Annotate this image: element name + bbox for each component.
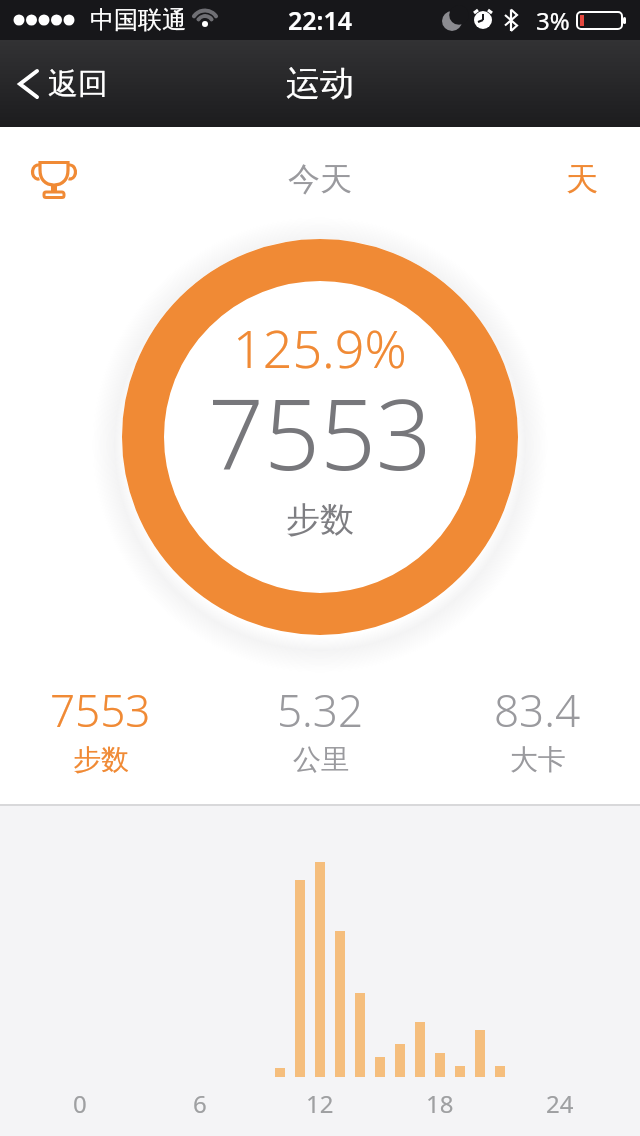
staticText: 中国联通: [90, 5, 186, 35]
staticText: 125.9%: [233, 312, 407, 383]
staticText: 返回: [48, 65, 108, 103]
staticText: 天: [566, 159, 598, 199]
button[interactable]: 天: [0, 149, 598, 209]
staticText: 24: [546, 1087, 574, 1120]
staticText: 3%: [536, 4, 570, 37]
staticText: 步数: [286, 498, 354, 541]
staticText: 22:14: [288, 3, 353, 37]
staticText: 18: [426, 1087, 454, 1120]
button[interactable]: 83.4: [447, 680, 627, 775]
staticText: 运动: [286, 62, 354, 105]
staticText: 步数: [73, 742, 129, 775]
staticText: 大卡: [510, 742, 566, 775]
staticText: 7553: [208, 365, 432, 498]
staticText: 83.4: [494, 680, 581, 740]
staticText: 6: [193, 1087, 207, 1120]
staticText: 今天: [288, 159, 352, 199]
button[interactable]: 返回: [16, 40, 108, 127]
staticText: 7553: [50, 680, 151, 740]
button[interactable]: 7553: [10, 680, 190, 775]
staticText: 公里: [293, 742, 349, 775]
staticText: 5.32: [277, 680, 364, 740]
staticText: 0: [73, 1087, 87, 1120]
staticText: 12: [306, 1087, 334, 1120]
button[interactable]: [32, 159, 78, 205]
button[interactable]: 5.32: [230, 680, 410, 775]
